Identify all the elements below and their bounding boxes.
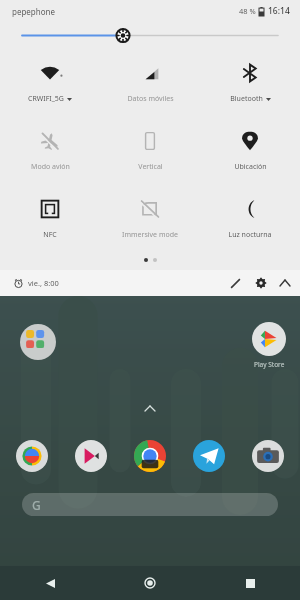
button[interactable]: Ubicación [200,128,300,174]
staticText: Play Store [254,360,285,369]
staticText: Ubicación [234,162,267,172]
button[interactable]: NFC [0,196,100,242]
button[interactable]: Collapse [274,270,296,296]
staticText: Bluetooth [230,94,263,104]
button[interactable]: Datos móviles [100,60,200,106]
button[interactable]: Recents [200,566,300,600]
staticText: CRWIFI_5G [28,94,64,104]
button[interactable]: Edit [222,270,248,296]
button[interactable]: Vertical [100,128,200,174]
button[interactable]: Open app drawer [145,406,155,411]
button[interactable]: Telegram [193,440,225,472]
staticText: NFC [43,230,57,240]
button[interactable]: vie., 8:00 [14,278,59,288]
button[interactable]: Photos [16,440,48,472]
staticText: Modo avión [31,162,70,172]
staticText: Luz nocturna [228,230,272,240]
button[interactable]: Chrome Beta [134,440,166,472]
button[interactable]: Play Store [246,322,292,369]
button[interactable]: Home [100,566,200,600]
button[interactable]: Brightness [0,22,300,48]
button[interactable]: CRWIFI_5G [0,60,100,106]
staticText: 16:14 [268,5,290,17]
staticText: pepephone [12,6,56,17]
button[interactable]: Camera [252,440,284,472]
staticText: 48 % [239,6,256,16]
staticText: Vertical [138,162,163,172]
button[interactable]: Modo avión [0,128,100,174]
staticText: G [32,497,41,513]
button[interactable]: Gallery [75,440,107,472]
button[interactable]: App folder [20,324,56,360]
button[interactable]: Settings [248,270,274,296]
button[interactable]: Luz nocturna [200,196,300,242]
staticText: Immersive mode [122,230,178,240]
button[interactable]: Back [0,566,100,600]
button[interactable]: Bluetooth [200,60,300,106]
button[interactable]: Search [22,493,278,516]
staticText: Datos móviles [127,94,174,104]
button[interactable]: Immersive mode [100,196,200,242]
staticText: vie., 8:00 [28,278,59,288]
